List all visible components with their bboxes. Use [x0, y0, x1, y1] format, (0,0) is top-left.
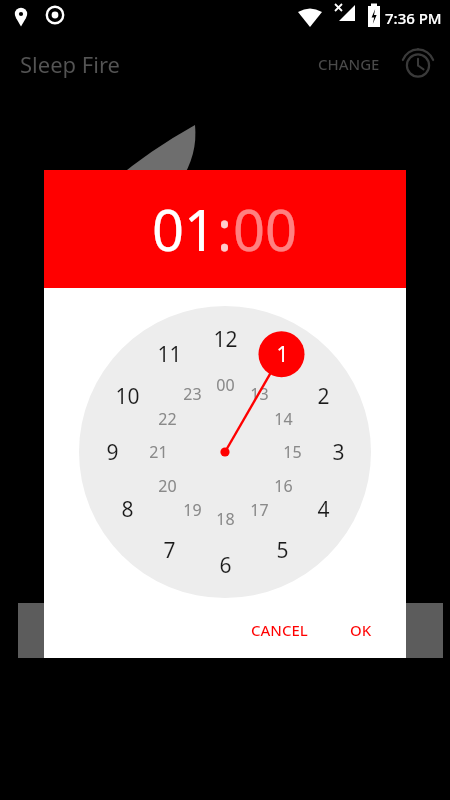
button[interactable]: CANCEL: [239, 612, 320, 648]
staticText: 10: [115, 382, 140, 411]
staticText: OK: [350, 620, 372, 640]
staticText: 11: [157, 340, 182, 369]
button[interactable]: OK: [338, 612, 384, 648]
staticText: 17: [250, 499, 269, 521]
staticText: 3: [332, 438, 345, 467]
staticText: 19: [183, 499, 202, 521]
staticText: 1: [276, 340, 289, 369]
staticText: 9: [106, 438, 119, 467]
staticText: 12: [213, 325, 238, 354]
staticText: 7:36 PM: [385, 8, 442, 28]
staticText: 6: [219, 551, 232, 580]
staticText: 22: [158, 408, 177, 430]
staticText: 13: [250, 383, 269, 405]
button[interactable]: Clock face: [79, 306, 371, 598]
button[interactable]: Alarm: [396, 42, 440, 86]
staticText: CHANGE: [318, 54, 380, 74]
staticText: CANCEL: [251, 620, 308, 640]
staticText: 21: [149, 441, 168, 463]
staticText: 8: [121, 495, 134, 524]
staticText: 1: [276, 340, 289, 369]
button[interactable]: CHANGE: [310, 48, 388, 80]
staticText: 16: [274, 475, 293, 497]
staticText: 01: [152, 191, 217, 267]
staticText: 18: [216, 508, 235, 530]
staticText: 00: [233, 191, 298, 267]
staticText: 5: [276, 536, 289, 565]
staticText: 2: [317, 382, 330, 411]
staticText: 4: [317, 495, 330, 524]
staticText: 20: [158, 475, 177, 497]
staticText: 00: [216, 374, 235, 396]
staticText: :: [217, 191, 233, 267]
staticText: 7: [163, 536, 176, 565]
staticText: 23: [183, 383, 202, 405]
staticText: 15: [283, 441, 302, 463]
button[interactable]: 00: [233, 191, 298, 267]
button[interactable]: 01: [152, 191, 217, 267]
staticText: 14: [274, 408, 293, 430]
staticText: Sleep Fire: [20, 49, 120, 79]
